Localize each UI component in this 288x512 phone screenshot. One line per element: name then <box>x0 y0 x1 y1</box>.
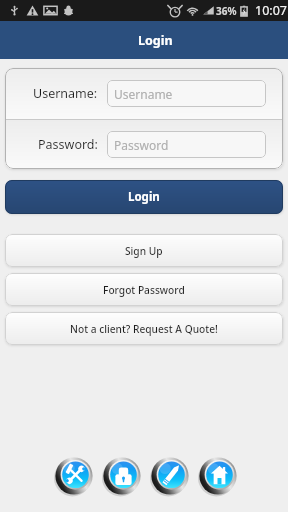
staticText: Password <box>114 137 169 153</box>
button[interactable]: Lock <box>100 454 144 498</box>
staticText: Username <box>114 86 173 102</box>
staticText: Forgot Password <box>103 283 185 297</box>
button[interactable]: Password <box>107 131 266 158</box>
button[interactable]: Edit <box>148 454 192 498</box>
staticText: Login <box>138 32 173 49</box>
staticText: Sign Up <box>125 244 163 258</box>
button[interactable]: Tools <box>52 454 96 498</box>
staticText: Login <box>128 189 160 205</box>
button[interactable]: Not a client? Request A Quote! <box>5 312 283 345</box>
staticText: Password: <box>38 136 98 153</box>
staticText: Username: <box>33 85 98 102</box>
button[interactable]: Home <box>196 454 240 498</box>
staticText: 36% <box>216 4 237 18</box>
button[interactable]: Forgot Password <box>5 273 283 306</box>
staticText: Not a client? Request A Quote! <box>70 322 218 336</box>
button[interactable]: Username <box>107 80 266 107</box>
button[interactable]: Login <box>5 180 283 214</box>
staticText: 10:07 <box>255 2 287 19</box>
button[interactable]: Sign Up <box>5 234 283 267</box>
